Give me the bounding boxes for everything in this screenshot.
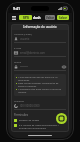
staticText: Usuário (Login) [14, 32, 32, 35]
staticText: usuario [20, 37, 66, 41]
button[interactable]: email@dominio.com [14, 50, 66, 56]
other: Mostrar senha [62, 65, 66, 69]
button[interactable]: Voltar [45, 15, 55, 20]
staticText: E-mail [14, 46, 22, 49]
staticText: Informação do usuário [23, 25, 57, 29]
button[interactable]: •••••••• [14, 64, 66, 70]
staticText: dash [33, 16, 41, 20]
staticText: É o contato de Agência/Distribuidor / En… [19, 124, 66, 130]
staticText: email@dominio.com [20, 51, 66, 55]
staticText: Voltar [46, 16, 54, 20]
button[interactable]: Menu [11, 15, 17, 21]
button[interactable]: Ajuda [56, 113, 67, 124]
staticText: Telefone [14, 99, 25, 102]
staticText: Senha [14, 60, 22, 63]
staticText: •••••••• [20, 65, 62, 69]
staticText: Permissões [14, 113, 28, 117]
staticText: Deve conter qualquer combinação de letra… [18, 82, 64, 88]
staticText: SYS [23, 16, 29, 20]
staticText: A sua senha tem que ter entre 8 e 16 car… [18, 76, 64, 82]
staticText: (00) 00000-0000 [20, 104, 66, 108]
staticText: Receber de Tickets [19, 119, 40, 122]
staticText: A password não pode conter o nome do usu… [18, 88, 64, 94]
button[interactable]: (00) 00000-0000 [14, 103, 66, 109]
staticText: Salvar [59, 16, 67, 20]
button[interactable]: Salvar [57, 15, 69, 20]
button[interactable]: É o contato de Agência/Distribuidor / En… [14, 124, 66, 130]
button[interactable]: Receber de Tickets [14, 119, 66, 122]
staticText: 9:41 [13, 6, 20, 11]
button[interactable]: usuario [14, 36, 66, 42]
